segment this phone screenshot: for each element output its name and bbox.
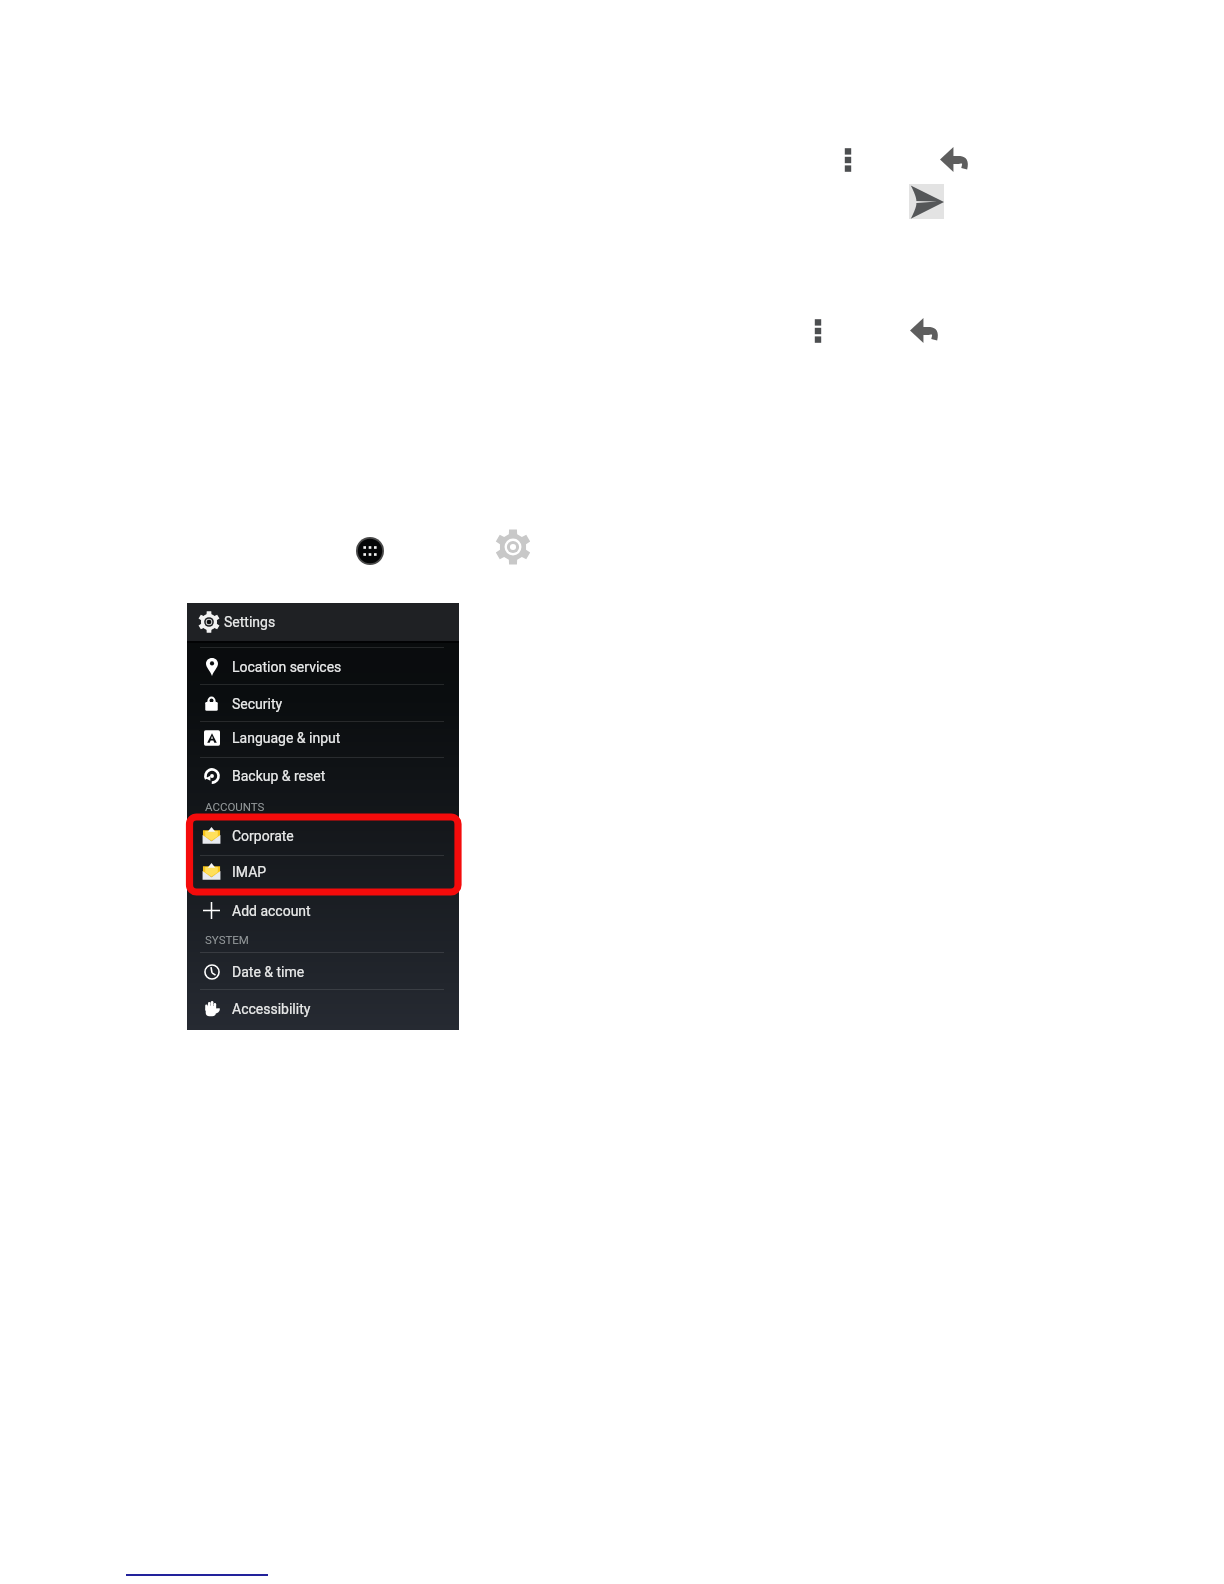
staticText: Language & input (232, 730, 341, 746)
staticText: Settings (224, 614, 276, 630)
button[interactable]: Security (187, 685, 459, 722)
staticText: Security (232, 696, 283, 712)
button[interactable]: Location services (187, 648, 459, 685)
button[interactable]: Accessibility (187, 990, 459, 1027)
staticText: Date & time (232, 964, 305, 980)
staticText: Backup & reset (232, 768, 326, 784)
button[interactable]: Add account (187, 892, 459, 929)
button[interactable]: IMAP (187, 853, 459, 890)
button[interactable]: Settings (187, 603, 459, 641)
button[interactable]: More options (837, 145, 859, 175)
staticText: IMAP (232, 864, 267, 880)
button[interactable]: Settings (495, 529, 531, 565)
button[interactable]: Language & input (187, 719, 459, 756)
button[interactable]: Reply (910, 318, 938, 343)
button[interactable]: Reply (940, 147, 968, 172)
button[interactable]: Corporate (187, 817, 459, 854)
button[interactable]: Backup & reset (187, 757, 459, 794)
staticText: SYSTEM (205, 933, 249, 946)
button[interactable]: Date & time (187, 953, 459, 990)
staticText: Location services (232, 659, 342, 675)
button[interactable]: Send (909, 184, 944, 219)
staticText: Accessibility (232, 1001, 311, 1017)
staticText: Corporate (232, 828, 294, 844)
staticText: ACCOUNTS (205, 800, 265, 813)
staticText: Add account (232, 903, 311, 919)
button[interactable]: Apps (356, 537, 384, 565)
button[interactable]: More options (807, 316, 829, 346)
